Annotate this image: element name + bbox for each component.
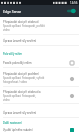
button[interactable]: Úprava úrovně síly sevření <box>0 35 79 46</box>
button[interactable]: Úprava úrovně síly sevření <box>0 107 79 118</box>
button[interactable]: Pokročilý režim <box>0 46 79 62</box>
staticText: Úprava úrovně síly sevření <box>3 111 37 115</box>
staticText: Spustit aplikaci Fotoaparát, vyfotit <box>3 76 45 80</box>
staticText: video <box>3 98 10 102</box>
button[interactable]: Přizpůsobit akci při stisknutí <box>0 17 79 34</box>
button[interactable]: Povolit pokročilý režim <box>0 57 79 68</box>
button[interactable]: Přizpůsobit akci při stisknutí a <box>0 87 79 104</box>
staticText: fotografovat / video <box>3 80 28 84</box>
staticText: Přizpůsobit akci při stisknutí a <box>3 90 41 94</box>
staticText: Pokročilý režim <box>3 52 22 56</box>
staticText: 14:56 <box>70 1 78 5</box>
button[interactable]: Přizpůsobit akci při podržení <box>0 69 79 87</box>
staticText: Přizpůsobit akci při podržení <box>3 72 39 76</box>
staticText: video <box>3 28 10 32</box>
staticText: Spustit aplikaci Fotoaparát, pořídit <box>3 24 45 28</box>
staticText: Povolit pokročilý režim <box>3 61 32 65</box>
staticText: Edge Sense <box>3 9 22 14</box>
button[interactable]: Edge Sense on/off <box>67 8 76 14</box>
button[interactable]: Využití úplného svázání <box>0 124 79 135</box>
staticText: Další nastavení <box>3 121 22 125</box>
staticText: Přizpůsobit akci při stisknutí <box>3 20 39 24</box>
button[interactable]: Edge Sense <box>0 5 79 17</box>
staticText: Spustit aplikaci Fotoaparát, <box>3 94 36 98</box>
button[interactable]: Další nastavení <box>0 117 79 128</box>
staticText: Úprava úrovně síly sevření <box>3 39 37 43</box>
staticText: Využití úplného svázání <box>3 128 33 132</box>
